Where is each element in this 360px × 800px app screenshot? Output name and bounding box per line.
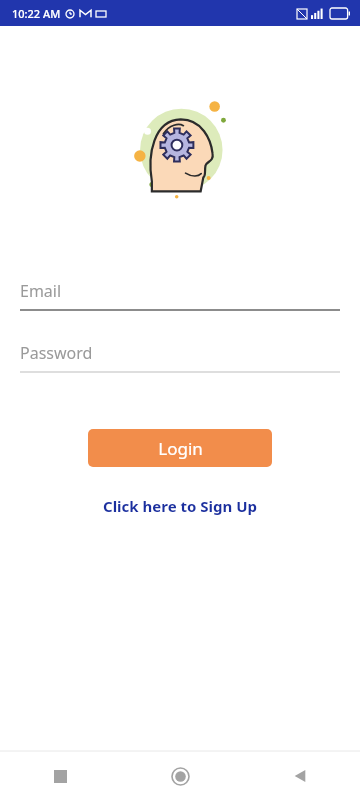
button[interactable]: Recents (0, 752, 120, 800)
button[interactable]: Login (88, 429, 272, 467)
button[interactable]: Home (120, 752, 240, 800)
button[interactable]: Password (20, 342, 340, 374)
staticText: Click here to Sign Up (103, 496, 257, 516)
button[interactable]: Email (20, 280, 340, 312)
button[interactable]: Click here to Sign Up (95, 492, 265, 520)
staticText: Email (20, 280, 62, 302)
staticText: Password (20, 342, 93, 364)
staticText: 10:22 AM (12, 6, 61, 21)
staticText: Login (158, 437, 203, 460)
button[interactable]: Back (240, 752, 360, 800)
